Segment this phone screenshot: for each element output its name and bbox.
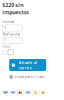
- button[interactable]: [2, 50, 7, 55]
- staticText: $220 sin impuestos: [2, 1, 29, 16]
- staticText: Cantidad: [2, 20, 14, 24]
- button[interactable]: 1: [2, 25, 22, 31]
- staticText: Añadir al carrito: [19, 60, 37, 70]
- button[interactable]: 1: [2, 37, 22, 44]
- staticText: 1: [4, 26, 6, 30]
- button[interactable]: Añadir al carrito: [9, 59, 46, 71]
- staticText: 1: [4, 39, 6, 42]
- staticText: Color: [2, 45, 10, 48]
- button[interactable]: [8, 50, 13, 55]
- staticText: Llegará gratis el jueves: [15, 75, 45, 79]
- staticText: Talla/Cantidad: [2, 33, 20, 36]
